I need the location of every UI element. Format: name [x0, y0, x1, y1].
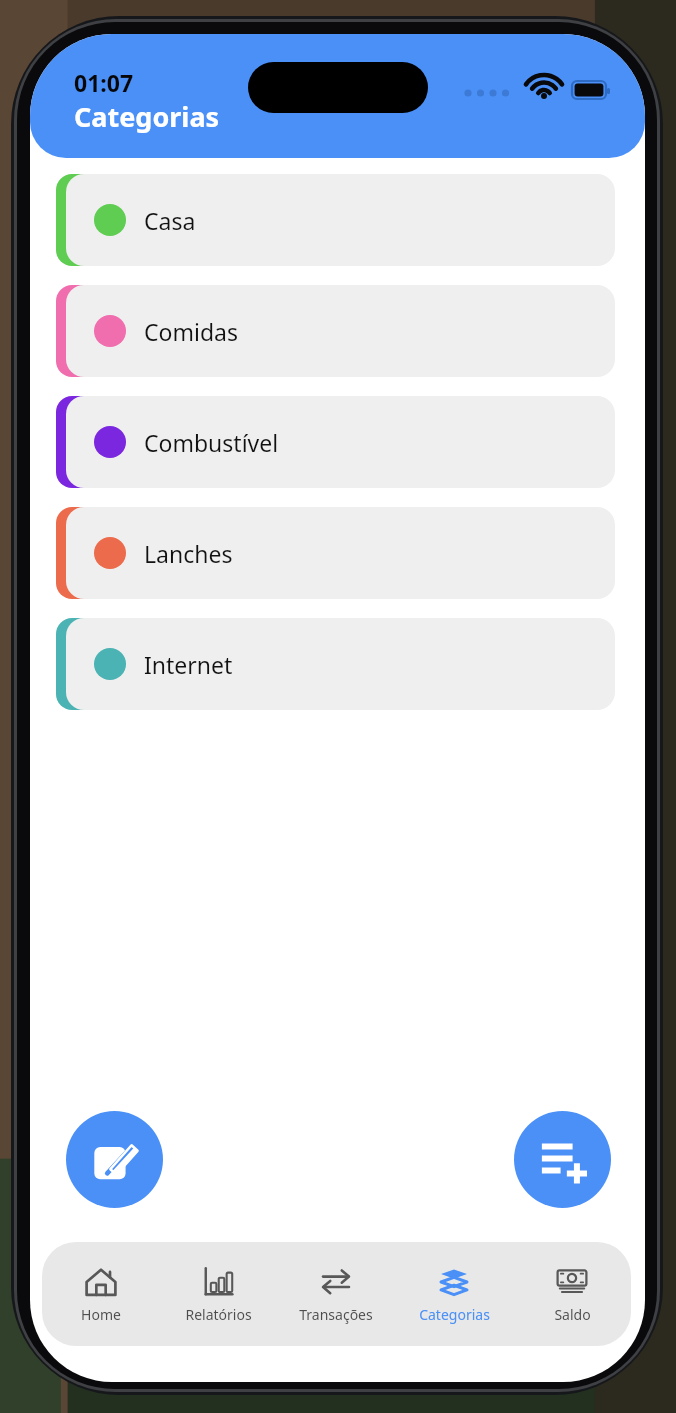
- staticText: Lanches: [144, 538, 233, 569]
- staticText: Casa: [144, 205, 196, 236]
- button[interactable]: Home: [42, 1242, 159, 1346]
- staticText: Comidas: [144, 316, 238, 347]
- staticText: Internet: [144, 649, 233, 680]
- staticText: Combustível: [144, 427, 279, 458]
- staticText: Transações: [299, 1305, 373, 1324]
- button[interactable]: Combustível: [56, 396, 615, 488]
- button[interactable]: Lanches: [56, 507, 615, 599]
- button[interactable]: Adicionar categoria: [514, 1111, 611, 1208]
- button[interactable]: Internet: [56, 618, 615, 710]
- staticText: Relatórios: [185, 1305, 252, 1324]
- staticText: Categorias: [74, 98, 220, 135]
- button[interactable]: Editar categoria: [66, 1111, 163, 1208]
- staticText: Categorias: [419, 1305, 490, 1324]
- staticText: Saldo: [554, 1305, 591, 1324]
- button[interactable]: Saldo: [513, 1242, 631, 1346]
- button[interactable]: Transações: [277, 1242, 395, 1346]
- staticText: 01:07: [74, 67, 134, 98]
- button[interactable]: Comidas: [56, 285, 615, 377]
- staticText: Home: [81, 1305, 121, 1324]
- button[interactable]: Relatórios: [159, 1242, 277, 1346]
- button[interactable]: Categorias: [395, 1242, 513, 1346]
- button[interactable]: Casa: [56, 174, 615, 266]
